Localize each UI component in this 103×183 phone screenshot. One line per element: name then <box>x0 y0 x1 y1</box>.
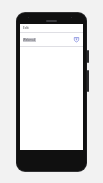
button[interactable]: Security <box>73 36 80 43</box>
button[interactable]: Webmail <box>20 35 83 44</box>
staticText: Edit <box>23 26 29 30</box>
button[interactable]: Edit <box>20 24 83 32</box>
staticText: Webmail <box>23 38 36 42</box>
